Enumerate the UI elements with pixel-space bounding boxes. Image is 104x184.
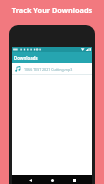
button[interactable]: 1066 TEST 2021 Cutting.mp3: [12, 64, 92, 74]
staticText: Track Your Downloads: [0, 5, 104, 15]
button[interactable]: Recents: [70, 176, 78, 184]
button[interactable]: Home: [48, 176, 56, 184]
staticText: 1066 TEST 2021 Cutting.mp3: [24, 67, 73, 72]
staticText: Downloads: [14, 55, 38, 61]
button[interactable]: Back: [26, 176, 34, 184]
